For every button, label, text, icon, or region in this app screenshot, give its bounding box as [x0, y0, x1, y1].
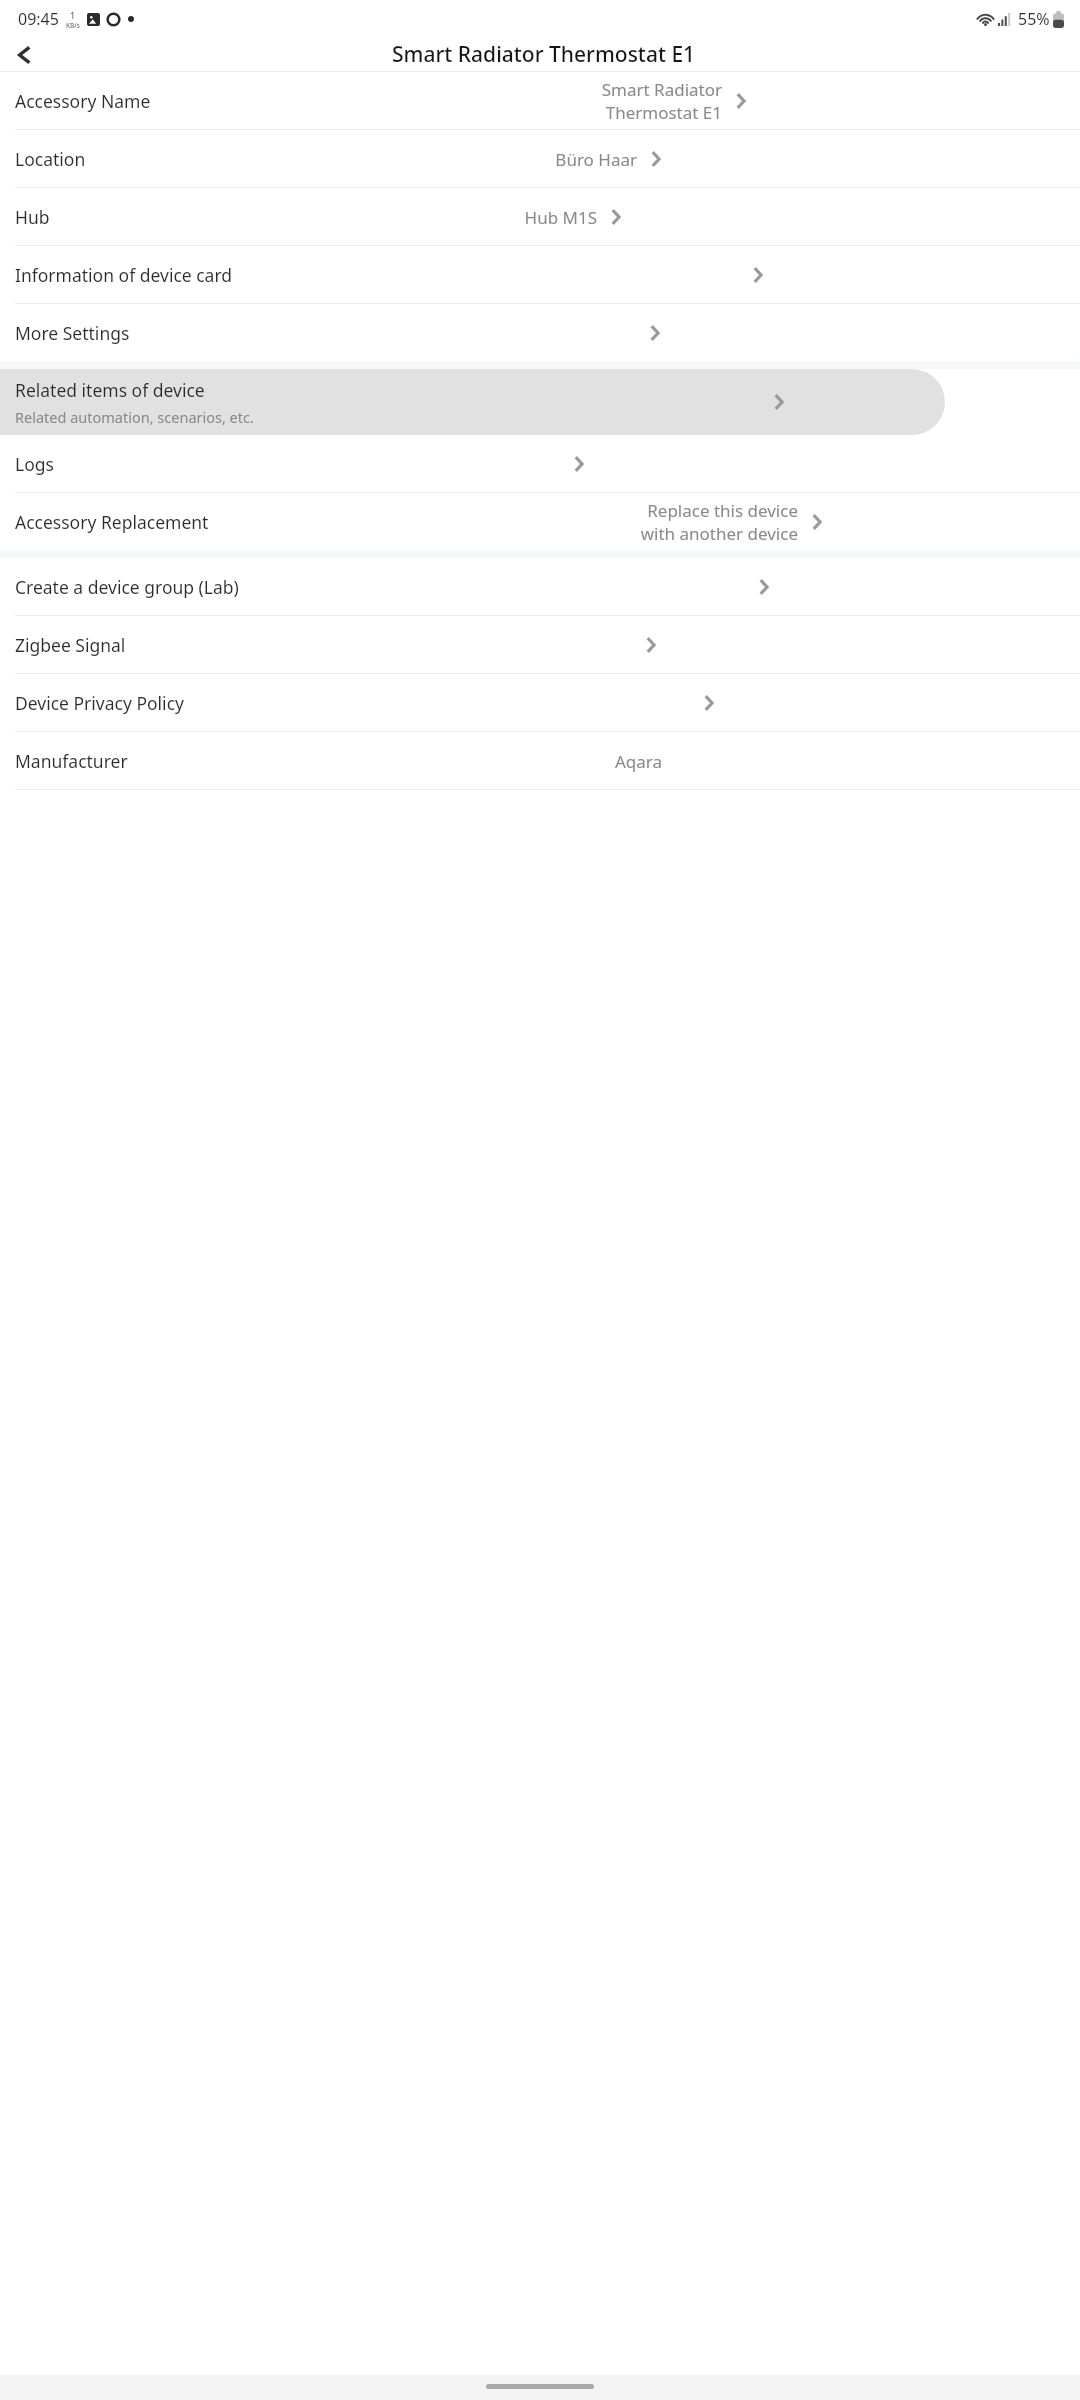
staticText: Replace this device with another device	[640, 499, 798, 545]
staticText: Aqara	[614, 750, 662, 773]
staticText: Smart Radiator Thermostat E1	[601, 78, 722, 124]
staticText: More Settings	[15, 321, 130, 345]
staticText: Büro Haar	[555, 148, 637, 171]
staticText: KB/s	[66, 21, 80, 30]
staticText: 1	[70, 9, 76, 21]
staticText: Hub M1S	[524, 206, 597, 229]
staticText: Accessory Name	[15, 89, 151, 113]
staticText: Related items of device	[15, 378, 205, 402]
button[interactable]: More Settings	[0, 304, 1080, 361]
button[interactable]: Information of device card	[0, 246, 1080, 304]
staticText: Manufacturer	[15, 749, 128, 773]
staticText: Information of device card	[15, 263, 233, 287]
staticText: Zigbee Signal	[15, 633, 126, 657]
button[interactable]: Location	[0, 130, 1080, 188]
button[interactable]: Manufacturer	[0, 732, 1080, 790]
staticText: Device Privacy Policy	[15, 691, 184, 715]
button[interactable]: Hub	[0, 188, 1080, 246]
staticText: Create a device group (Lab)	[15, 575, 239, 599]
staticText: 09:45	[18, 8, 59, 30]
button[interactable]: Logs	[0, 435, 1080, 493]
staticText: Related automation, scenarios, etc.	[15, 407, 254, 427]
staticText: 55%	[1018, 8, 1050, 30]
button[interactable]: Zigbee Signal	[0, 616, 1080, 674]
staticText: Location	[15, 147, 86, 171]
button[interactable]: Back	[0, 38, 48, 71]
staticText: Smart Radiator Thermostat E1	[392, 40, 696, 69]
staticText: Logs	[15, 452, 54, 476]
button[interactable]: Accessory Name	[0, 72, 1080, 130]
button[interactable]: Device Privacy Policy	[0, 674, 1080, 732]
staticText: Accessory Replacement	[15, 510, 209, 534]
button[interactable]: Related items of device	[0, 369, 1080, 435]
button[interactable]: Create a device group (Lab)	[0, 558, 1080, 616]
staticText: Hub	[15, 205, 50, 229]
button[interactable]: Accessory Replacement	[0, 493, 1080, 550]
